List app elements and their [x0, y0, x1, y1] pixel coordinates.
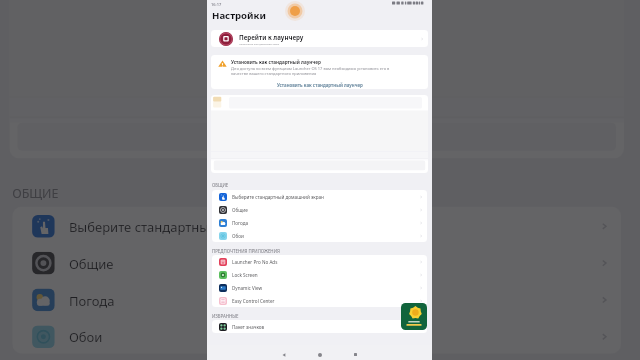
staticText: Посмотрите наш домашний экран: [239, 42, 280, 45]
staticText: ПРЕДПОЧТЕНИЯ ПРИЛОЖЕНИЯ: [212, 248, 280, 254]
staticText: Для доступа ко всем функциям Launcher OS…: [231, 66, 401, 76]
staticText: ОБЩИЕ: [212, 182, 229, 188]
staticText: Обои: [69, 328, 103, 345]
staticText: Установить как стандартный лаунчер: [231, 59, 321, 65]
staticText: Dynamic View: [232, 285, 263, 291]
staticText: Погода: [232, 220, 249, 226]
staticText: Погода: [69, 291, 117, 308]
staticText: Lock Screen: [232, 272, 258, 278]
button[interactable]: Home: [310, 347, 330, 360]
staticText: Перейти к лаунчеру: [239, 33, 304, 41]
button[interactable]: Обои: [212, 229, 427, 242]
staticText: Easy Control Center: [232, 298, 275, 304]
staticText: ОБЩИЕ: [12, 184, 60, 201]
button[interactable]: Погода: [212, 216, 427, 229]
button[interactable]: Общие: [12, 243, 621, 280]
button[interactable]: Обои: [12, 317, 621, 354]
staticText: ИЗБРАННЫЕ: [212, 313, 239, 319]
staticText: Установить как стандартный лаунчер: [277, 82, 363, 88]
staticText: Общие: [69, 255, 114, 272]
button[interactable]: Погода: [12, 280, 621, 317]
button[interactable]: Перейти к лаунчеру: [211, 30, 428, 47]
staticText: Общие: [232, 207, 248, 213]
staticText: 16:17: [211, 2, 222, 7]
button[interactable]: Общие: [212, 203, 427, 216]
button[interactable]: Easy Control Center: [212, 294, 427, 307]
staticText: Выберите стандартный домашний экран: [69, 218, 329, 235]
staticText: Пакет значков: [232, 324, 265, 330]
staticText: Выберите стандартный домашний экран: [232, 194, 324, 200]
button[interactable]: Back: [274, 347, 294, 360]
button[interactable]: Выберите стандартный домашний экран: [212, 190, 427, 203]
button[interactable]: Выберите стандартный домашний экран: [12, 206, 621, 243]
staticText: Обои: [232, 233, 244, 239]
button[interactable]: Launcher Pro No Ads: [212, 255, 427, 268]
button[interactable]: Пакет значков: [212, 320, 427, 333]
staticText: Launcher Pro No Ads: [232, 259, 278, 265]
button[interactable]: Установить как стандартный лаунчер: [211, 80, 428, 89]
button[interactable]: Dynamic View: [212, 281, 427, 294]
button[interactable]: Lock Screen: [212, 268, 427, 281]
staticText: Настройки: [212, 9, 266, 22]
button[interactable]: Recents: [345, 347, 365, 360]
